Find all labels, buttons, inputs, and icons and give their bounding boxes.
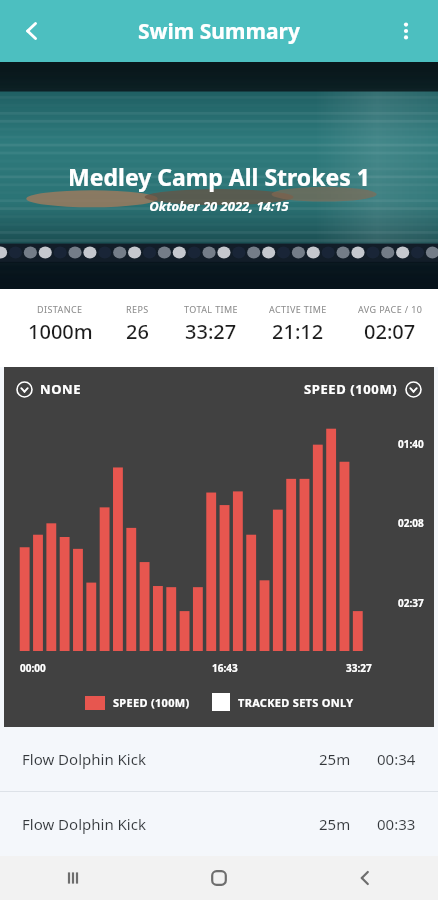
- button[interactable]: TRACKED SETS ONLY: [212, 693, 354, 711]
- staticText: TRACKED SETS ONLY: [238, 695, 354, 710]
- staticText: 26: [126, 318, 149, 345]
- staticText: 33:27: [185, 318, 237, 345]
- staticText: 1000m: [28, 318, 93, 345]
- staticText: Swim Summary: [138, 17, 300, 46]
- button[interactable]: Flow Dolphin Kick: [0, 792, 438, 856]
- staticText: 21:12: [272, 318, 324, 345]
- staticText: 16:43: [212, 661, 238, 675]
- staticText: AVG PACE / 10: [358, 303, 423, 315]
- staticText: 33:27: [346, 661, 372, 675]
- button[interactable]: SPEED (100M): [85, 695, 190, 710]
- staticText: Medley Camp All Strokes 1: [68, 161, 370, 192]
- button[interactable]: Flow Dolphin Kick: [0, 727, 438, 791]
- staticText: NONE: [40, 380, 82, 398]
- button[interactable]: NONE: [16, 380, 82, 398]
- staticText: SPEED (100M): [304, 380, 398, 398]
- staticText: 00:00: [20, 661, 46, 675]
- staticText: Flow Dolphin Kick: [22, 814, 146, 834]
- button[interactable]: Back: [8, 7, 56, 55]
- button[interactable]: More options: [382, 7, 430, 55]
- button[interactable]: Back: [292, 856, 438, 900]
- button[interactable]: Recents: [0, 856, 146, 900]
- staticText: 00:34: [377, 749, 416, 769]
- staticText: 02:07: [364, 318, 416, 345]
- staticText: 02:08: [398, 516, 424, 530]
- staticText: DISTANCE: [37, 303, 83, 315]
- staticText: 25m: [319, 814, 351, 834]
- staticText: 00:33: [377, 814, 416, 834]
- staticText: TOTAL TIME: [184, 303, 238, 315]
- staticText: Flow Dolphin Kick: [22, 749, 146, 769]
- staticText: 01:40: [398, 437, 424, 451]
- button[interactable]: Home: [146, 856, 292, 900]
- staticText: 02:37: [398, 596, 424, 610]
- staticText: SPEED (100M): [113, 695, 190, 710]
- staticText: ACTIVE TIME: [269, 303, 327, 315]
- staticText: Oktober 20 2022, 14:15: [149, 197, 289, 215]
- staticText: REPS: [126, 303, 149, 315]
- button[interactable]: SPEED (100M): [304, 380, 422, 398]
- staticText: 25m: [319, 749, 351, 769]
